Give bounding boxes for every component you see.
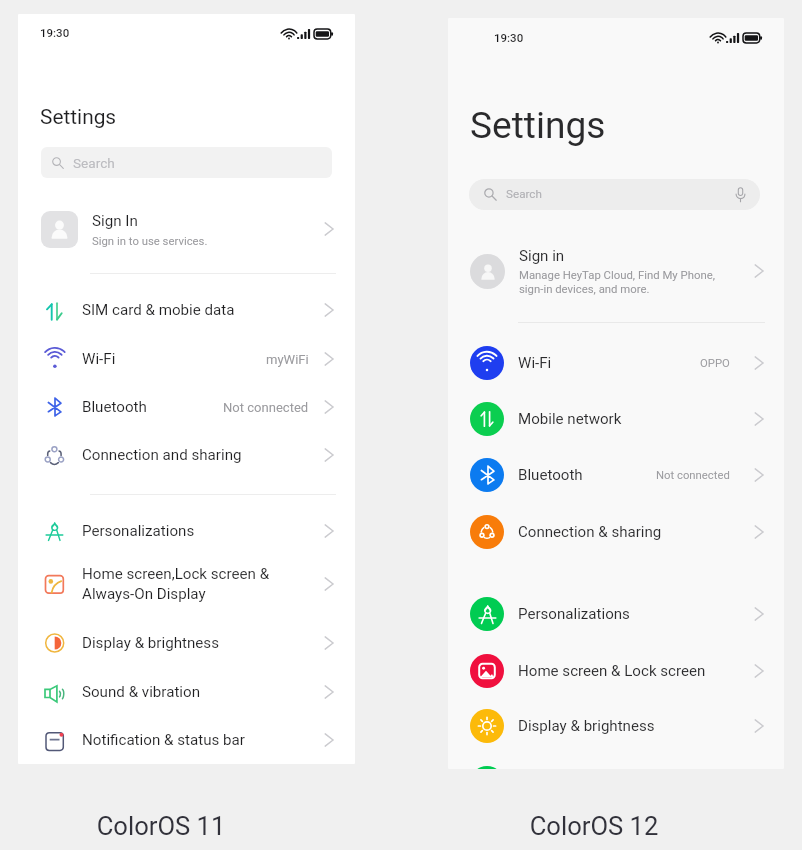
button[interactable]: Sound & vibration	[18, 668, 355, 716]
staticText: myWiFi	[266, 352, 309, 367]
staticText: sign-in devices, and more.	[519, 282, 650, 295]
staticText: Personalizations	[518, 605, 630, 623]
staticText: ColorOS 12	[494, 811, 694, 841]
button[interactable]: Sign In	[18, 200, 355, 258]
button[interactable]: Display & brightness	[18, 619, 355, 667]
button[interactable]: Sign in	[448, 238, 784, 304]
staticText: Home screen & Lock screen	[518, 662, 706, 680]
staticText: SIM card & mobie data	[82, 301, 235, 319]
staticText: Sound & vibration	[82, 683, 201, 701]
staticText: Mobile network	[518, 410, 622, 428]
staticText: Settings	[470, 104, 606, 147]
button[interactable]: Bluetooth	[448, 447, 784, 503]
staticText: Sign in	[519, 247, 565, 265]
button[interactable]: Wi-Fi	[18, 335, 355, 383]
staticText: OPPO	[700, 357, 730, 370]
button[interactable]: Home screen & Lock screen	[448, 643, 784, 699]
staticText: Personalizations	[82, 522, 195, 540]
button[interactable]: Bluetooth	[18, 383, 355, 431]
staticText: Search	[506, 187, 542, 201]
button[interactable]: Mobile network	[448, 391, 784, 447]
button[interactable]: Notification & status bar	[18, 716, 355, 764]
staticText: ColorOS 11	[61, 811, 261, 841]
staticText: Always-On Display	[82, 585, 206, 603]
button[interactable]: Personalizations	[448, 586, 784, 642]
button[interactable]: Search	[469, 179, 760, 210]
button[interactable]: Connection and sharing	[18, 431, 355, 479]
button[interactable]: Display & brightness	[448, 698, 784, 754]
staticText: Sign in to use services.	[92, 234, 208, 247]
staticText: 19:30	[494, 31, 524, 44]
staticText: Search	[73, 155, 115, 171]
button[interactable]: Connection & sharing	[448, 504, 784, 560]
staticText: Display & brightness	[82, 634, 219, 652]
button[interactable]: Voice search	[734, 187, 747, 203]
staticText: Notification & status bar	[82, 731, 245, 749]
staticText: Settings	[40, 105, 117, 129]
staticText: Bluetooth	[82, 398, 147, 416]
button[interactable]: Wi-Fi	[448, 335, 784, 391]
button[interactable]: Search	[41, 147, 332, 178]
button[interactable]: Home screen,Lock screen &	[18, 556, 355, 612]
staticText: 19:30	[40, 26, 70, 39]
staticText: Connection & sharing	[518, 523, 662, 541]
staticText: Bluetooth	[518, 466, 583, 484]
button[interactable]: SIM card & mobie data	[18, 286, 355, 334]
button[interactable]: Personalizations	[18, 507, 355, 555]
staticText: Not connected	[656, 469, 730, 482]
staticText: Wi-Fi	[82, 350, 116, 368]
staticText: Not connected	[223, 400, 309, 415]
staticText: Home screen,Lock screen &	[82, 565, 270, 583]
staticText: Display & brightness	[518, 717, 655, 735]
staticText: Manage HeyTap Cloud, Find My Phone,	[519, 268, 715, 281]
staticText: Connection and sharing	[82, 446, 242, 464]
staticText: Sign In	[92, 212, 138, 230]
staticText: Wi-Fi	[518, 354, 552, 372]
